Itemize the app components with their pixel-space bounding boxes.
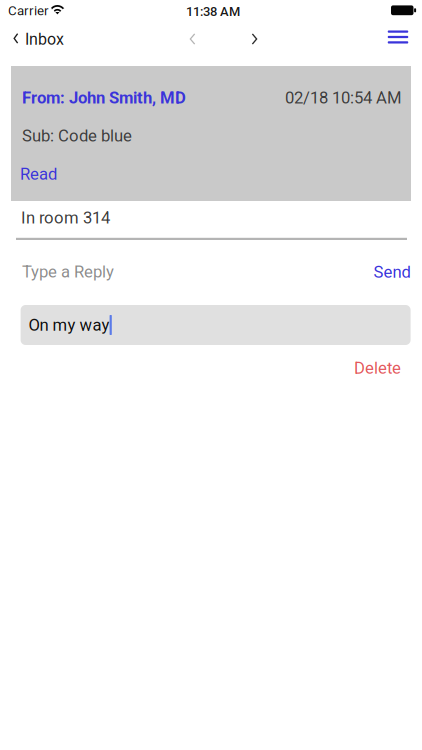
staticText: Carrier	[8, 3, 49, 19]
staticText: Delete	[354, 358, 401, 378]
staticText: Read	[20, 164, 57, 184]
staticText: From: John Smith, MD	[22, 88, 186, 107]
button[interactable]: Next message	[240, 24, 269, 54]
button[interactable]: Previous message	[178, 24, 207, 54]
staticText: 11:38 AM	[186, 4, 240, 19]
staticText: In room 314	[21, 208, 110, 227]
button[interactable]: Send	[366, 258, 418, 286]
button[interactable]: Delete	[340, 354, 401, 382]
button[interactable]: Inbox	[3, 24, 75, 54]
staticText: 02/18 10:54 AM	[285, 88, 402, 107]
staticText: Type a Reply	[22, 262, 114, 281]
staticText: Send	[373, 262, 410, 282]
button[interactable]: Read	[12, 160, 70, 188]
staticText: Inbox	[25, 30, 64, 49]
staticText: Sub: Code blue	[22, 126, 132, 145]
staticText: On my way	[29, 315, 110, 335]
button[interactable]: Reply text field	[21, 305, 411, 345]
button[interactable]: Menu	[381, 22, 415, 52]
